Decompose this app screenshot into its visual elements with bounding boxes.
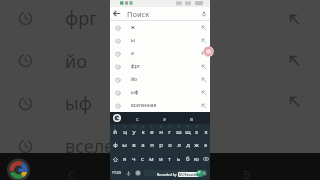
button[interactable]: а: [138, 138, 147, 152]
staticText: ?123: [112, 170, 122, 176]
button[interactable]: ыф: [110, 86, 210, 99]
button[interactable]: я: [120, 152, 129, 166]
staticText: л: [177, 141, 181, 149]
staticText: у: [132, 128, 136, 136]
button[interactable]: йо: [110, 73, 210, 86]
button[interactable]: х: [201, 124, 210, 138]
button[interactable]: вселенная: [110, 99, 210, 112]
button[interactable]: Insert query: [198, 22, 209, 33]
button[interactable]: фрг: [110, 60, 210, 73]
button[interactable]: и: [156, 152, 165, 166]
staticText: йо: [65, 49, 87, 74]
button[interactable]: Space: [144, 170, 188, 176]
staticText: вселе: [65, 134, 115, 159]
staticText: Recorded by: [157, 173, 177, 177]
staticText: ш: [176, 128, 182, 136]
button[interactable]: Voice search: [197, 7, 210, 20]
button[interactable]: Search: [198, 166, 210, 180]
button[interactable]: 8: [174, 124, 183, 138]
button[interactable]: Voice input: [123, 166, 133, 180]
button[interactable]: ю: [192, 152, 201, 166]
button[interactable]: л: [174, 138, 183, 152]
button[interactable]: ?123: [110, 166, 123, 180]
button[interactable]: в: [129, 138, 138, 152]
button[interactable]: э: [151, 112, 178, 124]
staticText: ф: [113, 141, 118, 149]
staticText: ыф: [131, 89, 139, 96]
button[interactable]: Insert query: [198, 35, 209, 46]
button[interactable]: 7: [165, 124, 174, 138]
button[interactable]: а: [110, 47, 210, 60]
button[interactable]: Screen recorder: [203, 46, 214, 57]
button[interactable]: э: [201, 138, 210, 152]
staticText: ц: [123, 128, 127, 136]
button[interactable]: Insert query: [198, 87, 209, 98]
button[interactable]: 6: [156, 124, 165, 138]
button[interactable]: ж: [192, 138, 201, 152]
staticText: к: [141, 128, 145, 136]
staticText: э: [204, 141, 207, 149]
staticText: ю: [194, 155, 199, 163]
staticText: а: [131, 50, 134, 57]
button[interactable]: м: [147, 152, 156, 166]
staticText: ж: [131, 24, 135, 31]
button[interactable]: ы: [110, 34, 210, 47]
staticText: 1: [114, 125, 116, 129]
button[interactable]: ь: [174, 152, 183, 166]
staticText: г: [168, 128, 171, 136]
staticText: а: [141, 141, 145, 149]
staticText: 6: [160, 125, 162, 129]
button[interactable]: 2: [120, 124, 129, 138]
button[interactable]: 5: [147, 124, 156, 138]
button[interactable]: т: [165, 152, 174, 166]
button[interactable]: Back: [110, 7, 123, 20]
staticText: 2: [124, 125, 126, 129]
staticText: п: [150, 141, 154, 149]
staticText: щ: [185, 128, 191, 136]
button[interactable]: 1: [110, 124, 120, 138]
button[interactable]: ы: [120, 138, 129, 152]
staticText: б: [186, 155, 190, 163]
staticText: м: [149, 155, 154, 163]
button[interactable]: Insert query: [198, 48, 209, 59]
button[interactable]: ф: [110, 138, 120, 152]
button[interactable]: п: [147, 138, 156, 152]
staticText: е: [150, 128, 154, 136]
button[interactable]: б: [183, 152, 192, 166]
button[interactable]: Insert query: [198, 61, 209, 72]
button[interactable]: Backspace: [201, 152, 210, 166]
staticText: н: [159, 128, 163, 136]
button[interactable]: 4: [138, 124, 147, 138]
button[interactable]: с: [123, 112, 151, 124]
staticText: .: [193, 169, 195, 177]
button[interactable]: ж: [110, 21, 210, 34]
staticText: о: [168, 141, 172, 149]
button[interactable]: в: [178, 112, 205, 124]
staticText: ж: [194, 141, 199, 149]
button[interactable]: 0: [192, 124, 201, 138]
button[interactable]: д: [183, 138, 192, 152]
staticText: 3: [133, 125, 135, 129]
button[interactable]: .: [189, 166, 198, 180]
button[interactable]: 9: [183, 124, 192, 138]
button[interactable]: Insert query: [198, 100, 209, 111]
staticText: р: [159, 141, 163, 149]
button[interactable]: о: [165, 138, 174, 152]
staticText: с: [136, 115, 139, 122]
staticText: й: [113, 128, 117, 136]
staticText: с: [68, 164, 75, 180]
staticText: и: [159, 155, 163, 163]
button[interactable]: р: [156, 138, 165, 152]
button[interactable]: Change language: [133, 166, 143, 180]
button[interactable]: с: [138, 152, 147, 166]
staticText: ч: [132, 155, 136, 163]
button[interactable]: ч: [129, 152, 138, 166]
staticText: 8: [178, 125, 180, 129]
staticText: ы: [122, 141, 127, 149]
button[interactable]: Google: [110, 112, 123, 124]
button[interactable]: Insert query: [198, 74, 209, 85]
staticText: в: [132, 141, 136, 149]
button[interactable]: 3: [129, 124, 138, 138]
button[interactable]: Shift: [110, 152, 120, 166]
staticText: я: [123, 155, 127, 163]
